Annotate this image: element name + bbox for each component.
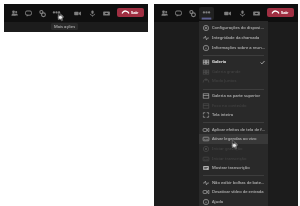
staticText: Não exibir bolhas de bate... — [212, 180, 265, 186]
staticText: Tela inteira — [212, 112, 265, 118]
staticText: Informações sobre a reuni... — [212, 45, 265, 51]
button[interactable]: Iniciar gravação — [199, 144, 268, 154]
staticText: Iniciar transcrição — [212, 156, 265, 162]
button[interactable]: More actions — [49, 7, 64, 20]
staticText: Galeria na parte superior — [212, 93, 265, 99]
staticText: Aplicar efeitos de tela de f... — [212, 127, 265, 133]
staticText: Foco no conteúdo — [212, 103, 265, 109]
button[interactable]: Participants — [8, 7, 20, 19]
button[interactable]: Share screen — [100, 7, 112, 19]
button[interactable]: Modo Juntos — [199, 76, 268, 86]
button[interactable]: Galeria — [199, 57, 268, 67]
button[interactable]: Share screen — [250, 7, 262, 19]
button[interactable]: Camera — [71, 7, 83, 19]
button[interactable]: Chat — [172, 7, 184, 19]
staticText: Ativar legendas ao vivo — [212, 136, 265, 142]
staticText: Sair — [131, 10, 139, 16]
staticText: Ajuda — [212, 199, 265, 205]
button[interactable]: Sair — [117, 8, 144, 17]
staticText: Iniciar gravação — [212, 146, 265, 152]
button[interactable]: Sair — [267, 8, 294, 17]
button[interactable]: More actions — [199, 7, 214, 20]
staticText: Modo Juntos — [212, 78, 265, 84]
button[interactable]: Informações sobre a reuni... — [199, 43, 268, 53]
button[interactable]: Desativar vídeo de entrada — [199, 187, 268, 197]
button[interactable]: Participants — [158, 7, 170, 19]
staticText: Galeria — [212, 59, 260, 65]
button[interactable]: Foco no conteúdo — [199, 101, 268, 111]
button[interactable]: Camera — [221, 7, 233, 19]
button[interactable]: Reactions — [36, 7, 48, 19]
staticText: Galeria grande — [212, 69, 265, 75]
button[interactable]: Microphone — [86, 7, 98, 19]
button[interactable]: Galeria grande — [199, 67, 268, 77]
button[interactable]: Iniciar transcrição — [199, 154, 268, 164]
button[interactable]: Ajuda — [199, 197, 268, 206]
button[interactable]: Microphone — [236, 7, 248, 19]
staticText: Mostrar transcrição — [212, 165, 265, 171]
staticText: Sair — [281, 10, 289, 16]
button[interactable]: Ativar legendas ao vivo — [199, 134, 268, 144]
staticText: Desativar vídeo de entrada — [212, 189, 265, 195]
button[interactable]: Integridade da chamada — [199, 33, 268, 43]
button[interactable]: Aplicar efeitos de tela de f... — [199, 125, 268, 135]
staticText: Mais ações — [54, 24, 76, 30]
button[interactable]: Chat — [22, 7, 34, 19]
button[interactable]: Galeria na parte superior — [199, 91, 268, 101]
staticText: Integridade da chamada — [212, 35, 265, 41]
button[interactable]: Mostrar transcrição — [199, 163, 268, 173]
button[interactable]: Não exibir bolhas de bate... — [199, 178, 268, 188]
button[interactable]: Tela inteira — [199, 110, 268, 120]
button[interactable]: Reactions — [186, 7, 198, 19]
button[interactable]: Configurações do disposit... — [199, 23, 268, 33]
staticText: Configurações do disposit... — [212, 25, 265, 31]
